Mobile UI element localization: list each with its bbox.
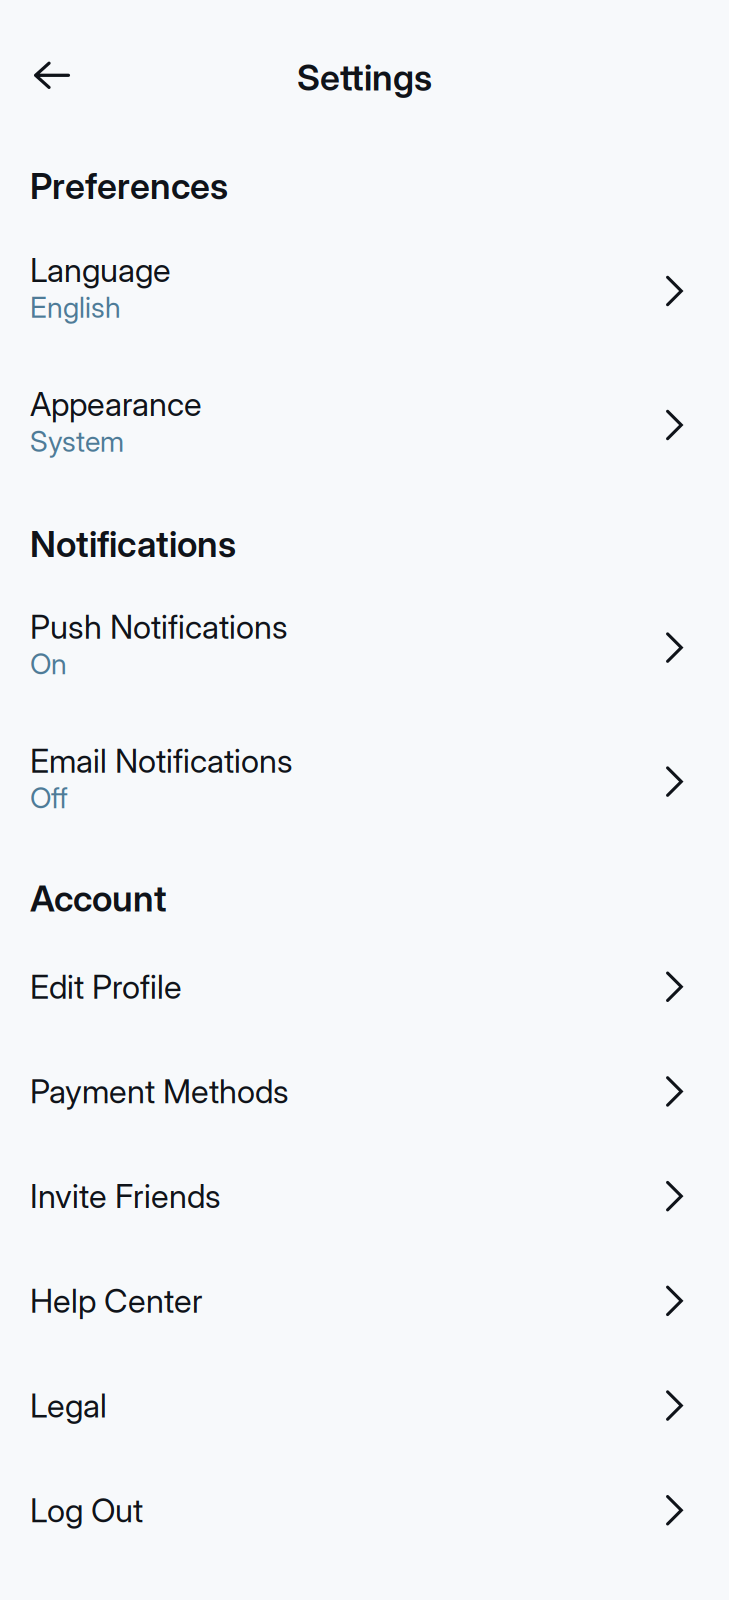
staticText: Legal — [30, 1386, 107, 1425]
button[interactable]: Edit Profile — [0, 934, 729, 1039]
button[interactable]: Legal — [0, 1353, 729, 1458]
button[interactable]: Email Notifications — [0, 715, 729, 849]
button[interactable]: Language — [0, 224, 729, 358]
staticText: Appearance — [30, 384, 202, 424]
staticText: Edit Profile — [30, 967, 182, 1006]
staticText: Notifications — [30, 522, 236, 566]
staticText: English — [30, 290, 121, 325]
button[interactable]: Log Out — [0, 1458, 729, 1563]
staticText: Payment Methods — [30, 1072, 289, 1111]
staticText: Account — [30, 877, 167, 920]
staticText: Push Notifications — [30, 607, 288, 646]
button[interactable]: Payment Methods — [0, 1039, 729, 1144]
staticText: System — [30, 424, 124, 459]
staticText: Off — [30, 780, 68, 815]
staticText: On — [30, 646, 67, 681]
button[interactable]: Back — [23, 44, 81, 104]
button[interactable]: Invite Friends — [0, 1144, 729, 1248]
staticText: Log Out — [30, 1490, 143, 1530]
button[interactable]: Help Center — [0, 1248, 729, 1353]
staticText: Help Center — [30, 1281, 203, 1321]
button[interactable]: Appearance — [0, 358, 729, 492]
staticText: Preferences — [30, 164, 228, 208]
staticText: Email Notifications — [30, 741, 293, 780]
staticText: Settings — [297, 56, 432, 99]
staticText: Invite Friends — [30, 1176, 221, 1216]
button[interactable]: Push Notifications — [0, 581, 729, 715]
staticText: Language — [30, 250, 171, 290]
